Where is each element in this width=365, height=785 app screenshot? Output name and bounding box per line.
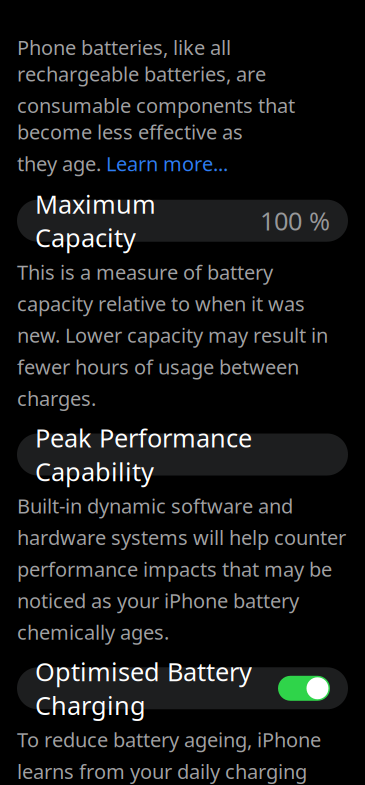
staticText: consumable components that become less e… — [17, 92, 295, 145]
staticText: This is a measure of battery capacity re… — [17, 259, 328, 411]
button[interactable]: Maximum Capacity — [17, 200, 348, 242]
staticText: 100 % — [260, 204, 330, 237]
button[interactable]: Learn more... — [106, 150, 228, 177]
staticText: To reduce battery ageing, iPhone learns … — [17, 726, 329, 785]
button[interactable]: Peak Performance Capability — [17, 433, 348, 475]
button[interactable]: Optimised Battery Charging — [17, 667, 348, 709]
staticText: Maximum Capacity — [35, 187, 156, 254]
staticText: Peak Performance Capability — [35, 421, 252, 488]
staticText: Phone batteries, like all rechargeable b… — [17, 34, 266, 87]
staticText: Built-in dynamic software and hardware s… — [17, 492, 346, 645]
staticText: Optimised Battery Charging — [35, 655, 252, 722]
staticText: Learn more... — [106, 150, 228, 177]
staticText: they age. — [17, 150, 106, 177]
